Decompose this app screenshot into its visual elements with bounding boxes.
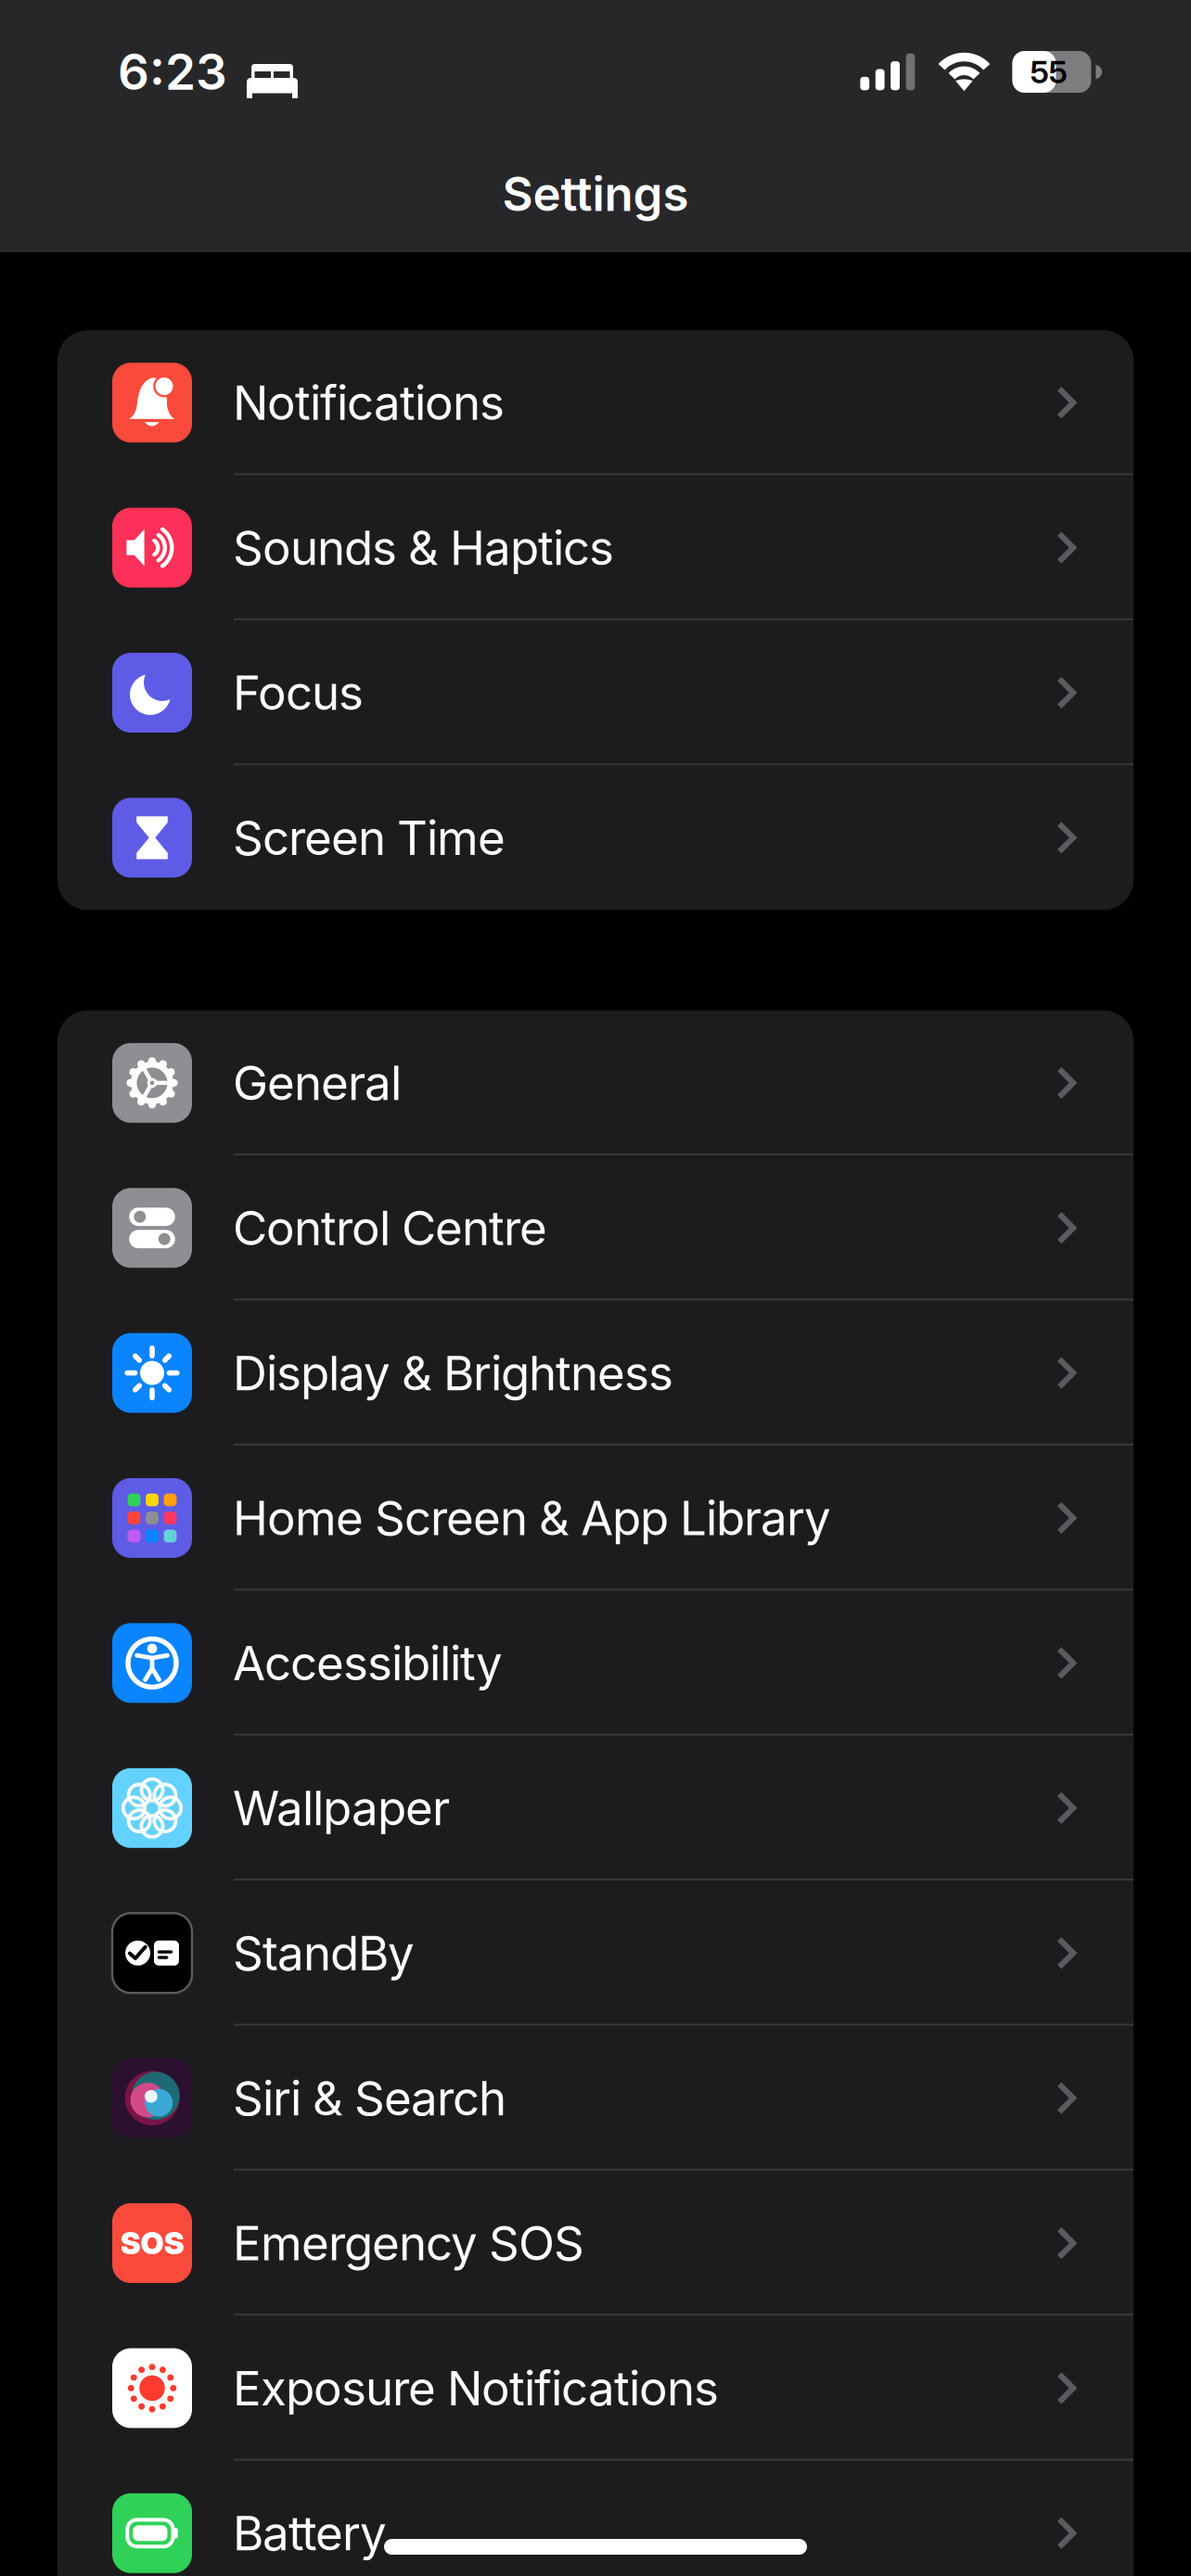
staticText: StandBy xyxy=(233,1924,415,1982)
button[interactable]: Screen Time xyxy=(58,765,1133,910)
button[interactable]: Accessibility xyxy=(58,1590,1133,1736)
staticText: Exposure Notifications xyxy=(233,2359,719,2417)
button[interactable]: General xyxy=(58,1010,1133,1155)
staticText: 6:23 xyxy=(118,42,227,102)
button[interactable]: Focus xyxy=(58,620,1133,765)
staticText: Display & Brightness xyxy=(233,1344,673,1401)
button[interactable]: Control Centre xyxy=(58,1155,1133,1300)
staticText: General xyxy=(233,1054,402,1111)
staticText: Emergency SOS xyxy=(233,2214,584,2272)
staticText: Home Screen & App Library xyxy=(233,1489,831,1547)
staticText: Screen Time xyxy=(233,809,506,866)
staticText: Control Centre xyxy=(233,1199,547,1256)
button[interactable]: StandBy xyxy=(58,1881,1133,2026)
staticText: Focus xyxy=(233,664,364,721)
button[interactable]: Battery xyxy=(58,2461,1133,2576)
button[interactable]: Home Screen & App Library xyxy=(58,1445,1133,1590)
staticText: 55 xyxy=(1030,53,1067,91)
staticText: Battery xyxy=(233,2505,387,2562)
staticText: SOS xyxy=(120,2225,184,2262)
button[interactable]: Exposure Notifications xyxy=(58,2316,1133,2461)
staticText: Notifications xyxy=(233,374,505,431)
button[interactable]: Wallpaper xyxy=(58,1736,1133,1881)
staticText: Settings xyxy=(502,165,689,222)
staticText: Wallpaper xyxy=(233,1779,450,1837)
button[interactable]: Notifications xyxy=(58,330,1133,475)
staticText: Siri & Search xyxy=(233,2069,506,2127)
button[interactable]: SOS xyxy=(58,2171,1133,2316)
staticText: Accessibility xyxy=(233,1634,503,1692)
staticText: Sounds & Haptics xyxy=(233,519,614,576)
button[interactable]: Siri & Search xyxy=(58,2026,1133,2171)
button[interactable]: Sounds & Haptics xyxy=(58,475,1133,620)
button[interactable]: Display & Brightness xyxy=(58,1300,1133,1445)
